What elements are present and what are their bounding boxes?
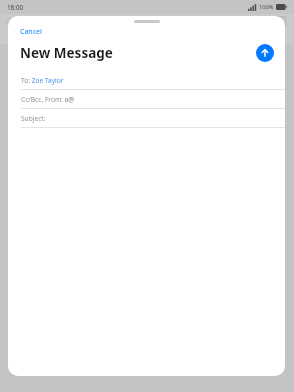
staticText: Cancel xyxy=(20,27,42,37)
button[interactable]: Subject: xyxy=(8,109,285,127)
button[interactable]: Cc/Bcc, From: a@ xyxy=(8,90,285,108)
staticText: To: Zoe Taylor xyxy=(21,76,64,85)
button[interactable]: Send xyxy=(256,44,274,62)
staticText: 100% xyxy=(259,3,274,11)
staticText: New Message xyxy=(20,44,113,62)
button[interactable]: To: Zoe Taylor xyxy=(8,71,285,89)
staticText: 18:00 xyxy=(7,3,24,12)
button[interactable]: Cancel xyxy=(18,25,44,39)
staticText: Subject: xyxy=(21,114,46,123)
staticText: Cc/Bcc, From: a@ xyxy=(21,95,75,104)
